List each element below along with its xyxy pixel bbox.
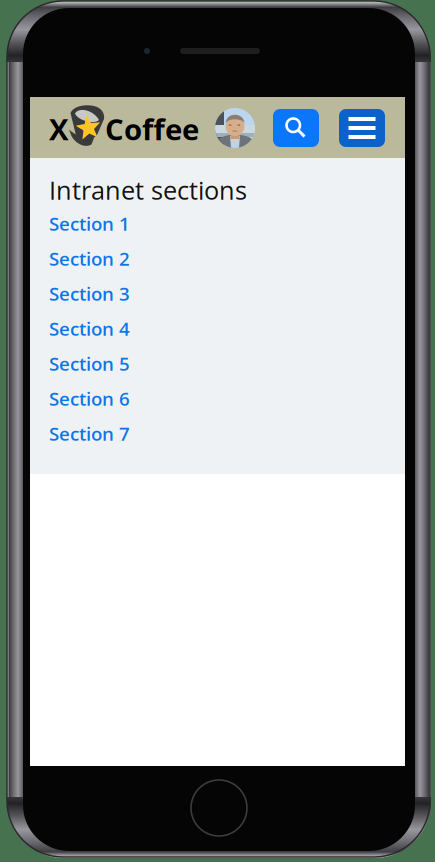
staticText: Coffee xyxy=(105,109,199,149)
staticText: Section 6 xyxy=(49,386,130,411)
staticText: Intranet sections xyxy=(49,173,247,207)
staticText: Section 3 xyxy=(49,281,130,306)
button[interactable]: Section 3 xyxy=(49,276,405,311)
button[interactable]: Section 5 xyxy=(49,346,405,381)
button[interactable]: Section 7 xyxy=(49,416,405,451)
staticText: Section 5 xyxy=(49,351,130,376)
button[interactable]: Menu xyxy=(339,109,385,147)
staticText: Section 7 xyxy=(49,421,130,446)
button[interactable]: X xyxy=(49,103,197,151)
button[interactable]: Section 2 xyxy=(49,241,405,276)
staticText: Section 2 xyxy=(49,246,130,271)
button[interactable]: Section 1 xyxy=(49,206,405,241)
staticText: X xyxy=(49,109,69,149)
button[interactable]: Section 4 xyxy=(49,311,405,346)
button[interactable]: Search xyxy=(273,109,319,147)
staticText: Section 4 xyxy=(49,316,130,341)
button[interactable]: Section 6 xyxy=(49,381,405,416)
staticText: Section 1 xyxy=(49,211,130,236)
